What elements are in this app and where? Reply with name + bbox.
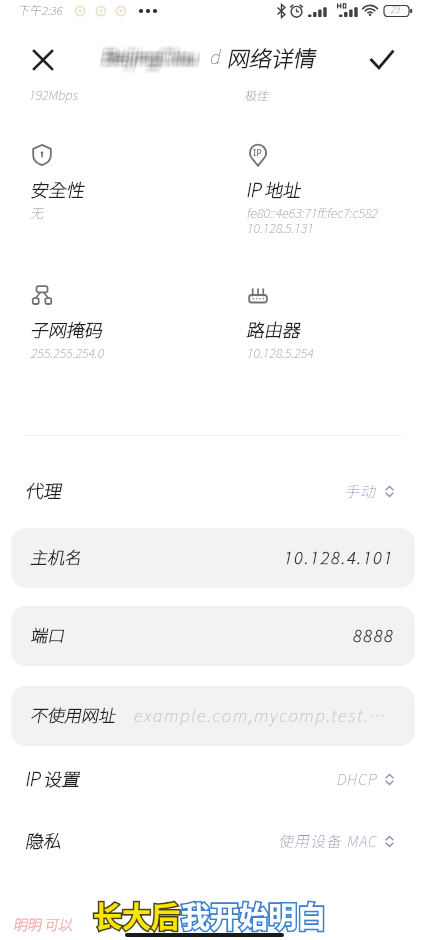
staticText: BeijingClou — [109, 46, 202, 68]
staticText: BeijingClou — [105, 47, 198, 69]
staticText: BeijingClou — [100, 48, 193, 70]
staticText: BeijingClou — [100, 49, 193, 71]
staticText: BeijingClou — [109, 46, 202, 68]
staticText: BeijingClou — [108, 48, 201, 70]
staticText: BeijingClou — [106, 45, 199, 67]
staticText: IP — [253, 146, 262, 158]
staticText: BeijingClou — [101, 42, 194, 64]
staticText: BeijingClou — [106, 44, 199, 66]
button[interactable]: 主机名 — [11, 528, 415, 588]
button[interactable]: Close — [24, 41, 62, 79]
staticText: BeijingClou — [106, 48, 199, 70]
staticText: BeijingClou — [100, 50, 193, 72]
staticText: d — [210, 46, 221, 68]
staticText: 长大后 — [93, 894, 181, 936]
staticText: BeijingClou — [100, 43, 193, 65]
staticText: BeijingClou — [101, 45, 194, 67]
staticText: BeijingClou — [100, 47, 193, 69]
staticText: BeijingClou — [103, 43, 196, 65]
staticText: BeijingClou — [99, 48, 192, 70]
staticText: BeijingClou — [105, 48, 198, 70]
staticText: BeijingClou — [105, 48, 198, 70]
staticText: BeijingClou — [99, 48, 192, 70]
staticText: BeijingClou — [102, 42, 195, 64]
staticText: BeijingClou — [99, 44, 192, 66]
staticText: IP 地址 — [247, 180, 302, 201]
staticText: 极佳 — [245, 88, 270, 102]
staticText: BeijingClou — [99, 47, 192, 69]
staticText: BeijingClou — [109, 48, 202, 70]
staticText: 10.128.4.101 — [284, 548, 395, 568]
staticText: BeijingClou — [104, 44, 197, 66]
staticText: fe80::4e63:71ff:fec7:c582 — [247, 205, 379, 220]
staticText: BeijingClou — [109, 49, 202, 71]
button[interactable]: 代理 — [0, 478, 425, 504]
staticText: 手动 — [345, 482, 378, 500]
staticText: BeijingClou — [103, 48, 196, 70]
staticText: BeijingClou — [109, 42, 202, 64]
staticText: BeijingClou — [101, 43, 194, 65]
staticText: BeijingClou — [101, 50, 194, 72]
staticText: 子网掩码 — [31, 320, 103, 341]
staticText: 明明 可以 — [14, 916, 74, 933]
staticText: BeijingClou — [100, 42, 193, 64]
staticText: 我开始明白 — [181, 894, 327, 936]
staticText: BeijingClou — [109, 44, 202, 66]
staticText: BeijingClou — [108, 44, 201, 66]
staticText: BeijingClou — [109, 44, 202, 66]
staticText: BeijingClou — [103, 44, 196, 66]
staticText: BeijingClou — [104, 48, 197, 70]
staticText: BeijingClou — [105, 49, 198, 71]
staticText: BeijingClou — [105, 46, 198, 68]
staticText: DHCP — [337, 770, 378, 788]
staticText: BeijingClou — [105, 50, 198, 72]
staticText: BeijingClou — [106, 50, 199, 72]
staticText: 10.128.5.254 — [247, 345, 314, 360]
staticText: BeijingClou — [107, 47, 200, 69]
staticText: 29 — [391, 4, 400, 15]
staticText: BeijingClou — [109, 49, 202, 71]
staticText: 网络详情 — [228, 46, 317, 72]
staticText: BeijingClou — [104, 46, 197, 68]
staticText: BeijingClou — [103, 50, 196, 72]
staticText: BeijingClou — [109, 47, 202, 69]
button[interactable]: IP 设置 — [0, 766, 425, 792]
staticText: BeijingClou — [99, 42, 192, 64]
staticText: BeijingClou — [102, 43, 195, 65]
staticText: BeijingClou — [109, 44, 202, 66]
staticText: BeijingClou — [107, 42, 200, 64]
button[interactable]: 不使用网址 — [11, 686, 415, 746]
staticText: 8888 — [353, 626, 395, 646]
staticText: BeijingClou — [99, 43, 192, 65]
staticText: BeijingClou — [108, 49, 201, 71]
staticText: 路由器 — [247, 320, 301, 341]
staticText: 无 — [31, 205, 45, 220]
button[interactable]: Confirm — [363, 41, 401, 79]
staticText: 使用设备 MAC — [279, 832, 378, 850]
staticText: 主机名 — [31, 548, 82, 568]
staticText: BeijingClou — [99, 44, 192, 66]
staticText: BeijingClou — [108, 44, 201, 66]
staticText: BeijingClou — [108, 46, 201, 68]
staticText: BeijingClou — [103, 45, 196, 67]
staticText: BeijingClou — [104, 42, 197, 64]
staticText: BeijingClou — [108, 43, 201, 65]
staticText: BeijingClou — [100, 44, 193, 66]
staticText: BeijingClou — [106, 48, 199, 70]
staticText: BeijingClou — [105, 44, 198, 66]
staticText: BeijingClou — [103, 42, 196, 64]
staticText: BeijingClou — [101, 48, 194, 70]
staticText: BeijingClou — [108, 45, 201, 67]
staticText: BeijingClou — [102, 49, 195, 71]
button[interactable]: 端口 — [11, 606, 415, 666]
staticText: 255.255.254.0 — [31, 345, 105, 360]
staticText: BeijingClou — [104, 48, 197, 70]
staticText: BeijingClou — [101, 44, 194, 66]
staticText: BeijingClou — [104, 47, 197, 69]
staticText: BeijingClou — [103, 44, 196, 66]
staticText: BeijingClou — [102, 48, 195, 70]
staticText: BeijingClou — [107, 44, 200, 66]
button[interactable]: 隐私 — [0, 828, 425, 854]
staticText: 不使用网址 — [31, 706, 116, 726]
staticText: BeijingClou — [100, 42, 193, 64]
